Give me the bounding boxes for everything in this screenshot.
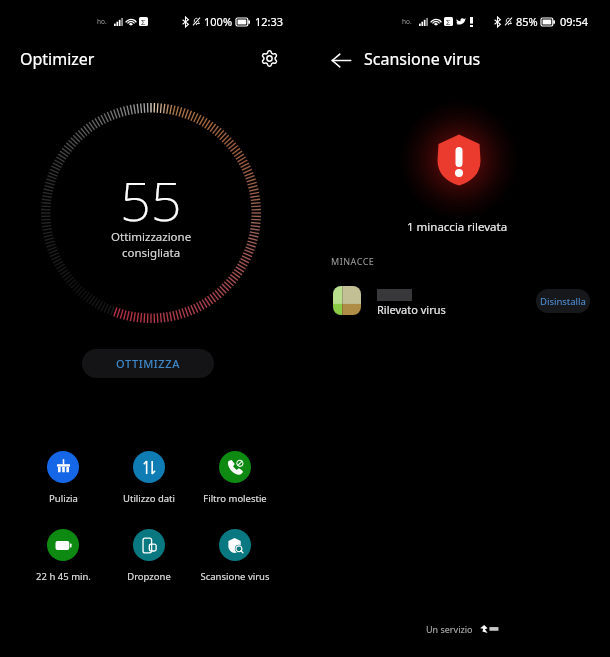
button[interactable]: Scansione virus — [194, 529, 276, 583]
staticText: 09:54 — [560, 14, 589, 29]
button[interactable]: OTTIMIZZA — [82, 349, 214, 378]
staticText: Ottimizzazione — [111, 229, 192, 245]
staticText: 100% — [204, 14, 233, 29]
staticText: MINACCE — [331, 255, 375, 267]
staticText: Σ — [446, 17, 451, 26]
staticText: Un servizio — [426, 623, 473, 635]
button[interactable]: Filtro molestie — [194, 451, 276, 505]
button[interactable]: Pulizia — [22, 451, 104, 505]
staticText: Disinstalla — [540, 295, 586, 308]
button[interactable]: 22 h 45 min. — [22, 529, 104, 583]
staticText: Dropzone — [127, 570, 171, 583]
staticText: 1 minaccia rilevata — [407, 219, 508, 235]
staticText: Filtro molestie — [203, 492, 267, 505]
staticText: Utilizzo dati — [123, 492, 175, 505]
staticText: 12:33 — [255, 14, 284, 29]
staticText: Optimizer — [20, 48, 95, 70]
button[interactable]: Utilizzo dati — [108, 451, 190, 505]
button[interactable]: Rilevato virus — [305, 283, 610, 321]
staticText: 22 h 45 min. — [36, 570, 91, 583]
staticText: 55 — [120, 163, 182, 237]
staticText: Scansione virus — [200, 570, 270, 583]
staticText: Scansione virus — [364, 48, 481, 70]
staticText: OTTIMIZZA — [116, 356, 180, 371]
staticText: Σ — [141, 17, 146, 26]
button[interactable]: Disinstalla — [536, 289, 590, 313]
button[interactable]: Back — [327, 46, 355, 74]
staticText: ho. — [402, 17, 412, 26]
staticText: ho. — [97, 17, 107, 26]
staticText: Rilevato virus — [377, 302, 446, 317]
staticText: 85% — [516, 14, 538, 29]
staticText: consigliata — [122, 245, 181, 261]
staticText: Pulizia — [49, 492, 78, 505]
button[interactable]: Settings — [255, 44, 283, 72]
button[interactable]: Dropzone — [108, 529, 190, 583]
